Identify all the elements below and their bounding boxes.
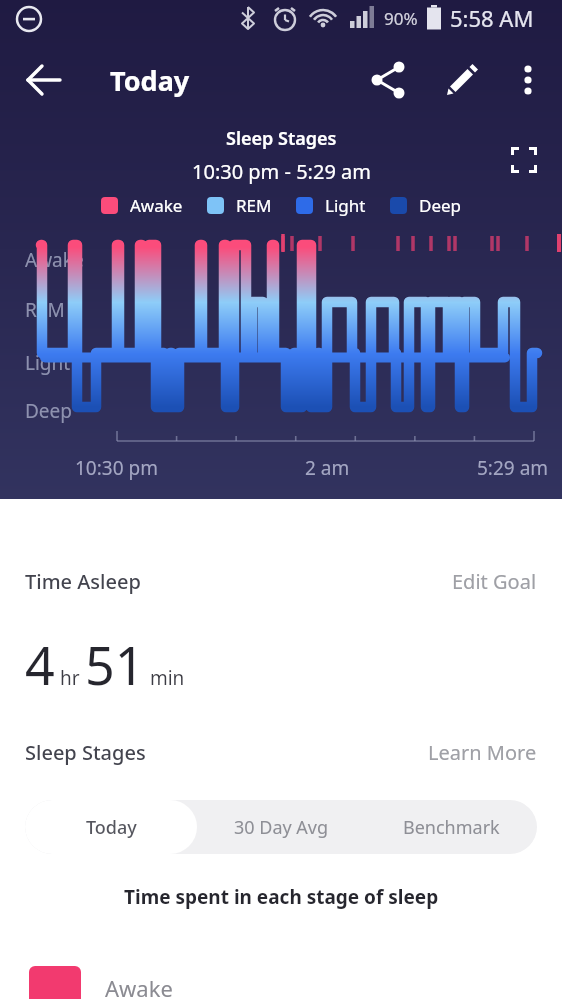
staticText: Benchmark (403, 815, 500, 840)
staticText: Time spent in each stage of sleep (124, 884, 439, 910)
staticText: Deep (419, 194, 462, 217)
staticText: Awake (130, 194, 183, 217)
button[interactable] (508, 60, 548, 100)
staticText: REM (236, 194, 272, 217)
staticText: Awake (25, 247, 84, 273)
staticText: Light (325, 194, 366, 217)
staticText: Time Asleep (25, 568, 141, 595)
staticText: Sleep Stages (226, 126, 337, 151)
staticText: Today (110, 62, 190, 99)
staticText: 4 (25, 629, 55, 700)
staticText: 2 am (305, 455, 350, 481)
button[interactable]: Benchmark (365, 800, 537, 854)
staticText: 5:58 AM (450, 3, 534, 33)
button[interactable]: Today (25, 800, 197, 854)
staticText: 90% (384, 7, 418, 30)
button[interactable]: 30 Day Avg (195, 800, 367, 854)
staticText: 51 (85, 629, 145, 700)
staticText: Today (86, 815, 137, 840)
button[interactable]: Edit Goal (452, 568, 537, 595)
button[interactable] (442, 60, 482, 100)
staticText: 5:29 am (477, 455, 549, 481)
button[interactable] (368, 60, 408, 100)
staticText: min (145, 665, 185, 691)
staticText: Awake (105, 973, 173, 999)
staticText: 10:30 pm - 5:29 am (192, 158, 371, 185)
button[interactable] (511, 147, 537, 173)
staticText: REM (25, 297, 65, 323)
button[interactable]: Learn More (428, 739, 537, 766)
staticText: 30 Day Avg (234, 815, 329, 840)
button[interactable] (24, 60, 64, 100)
staticText: Sleep Stages (25, 739, 146, 766)
staticText: hr (55, 665, 85, 691)
staticText: Deep (25, 398, 72, 424)
staticText: 10:30 pm (75, 455, 158, 481)
staticText: Light (25, 350, 71, 376)
